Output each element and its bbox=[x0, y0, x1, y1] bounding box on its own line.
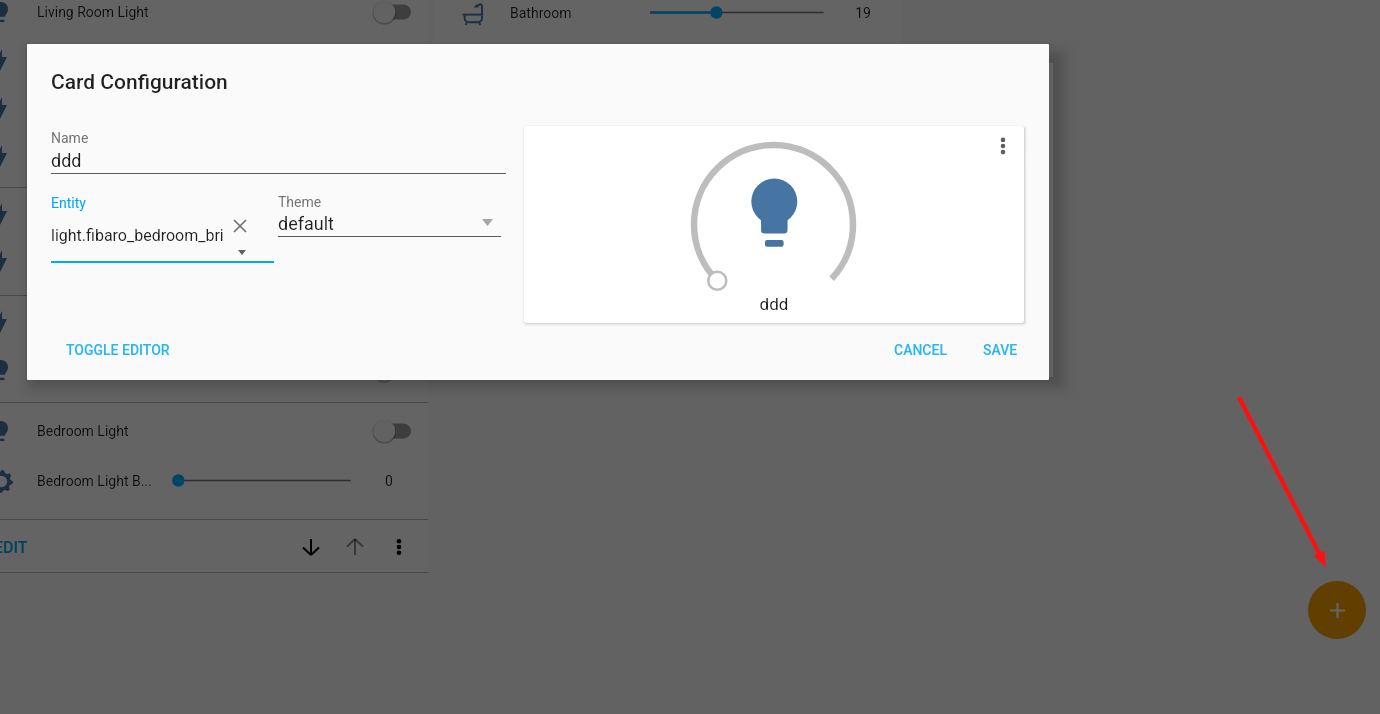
staticText: default bbox=[278, 213, 334, 234]
staticText: SAVE bbox=[983, 342, 1018, 358]
staticText: 0 bbox=[378, 473, 400, 489]
staticText: TOGGLE EDITOR bbox=[66, 342, 170, 358]
staticText: Theme bbox=[278, 194, 322, 210]
button[interactable]: Toggle bbox=[0, 347, 428, 393]
staticText: ddd bbox=[51, 150, 82, 171]
staticText: EDIT bbox=[0, 538, 28, 557]
staticText: Name bbox=[51, 130, 89, 146]
staticText: light.fibaro_bedroom_bri bbox=[51, 226, 224, 245]
button[interactable]: Living Room Light bbox=[0, 0, 428, 35]
button[interactable]: Toggle bbox=[366, 350, 418, 390]
button[interactable]: Bedroom Light B... bbox=[0, 458, 428, 504]
staticText: CANCEL bbox=[894, 342, 947, 358]
staticText: 19 bbox=[853, 5, 873, 21]
button[interactable] bbox=[0, 37, 428, 83]
button[interactable]: Open entity list bbox=[230, 240, 254, 264]
button[interactable]: Bedroom Light bbox=[0, 408, 428, 454]
staticText: Bedroom Light bbox=[37, 423, 129, 439]
button[interactable]: TOGGLE EDITOR bbox=[54, 332, 182, 368]
button[interactable]: Move card down bbox=[291, 527, 331, 567]
button[interactable]: SAVE bbox=[971, 332, 1030, 368]
button[interactable]: Toggle Living Room Light bbox=[366, 0, 418, 32]
staticText: Bathroom bbox=[510, 5, 572, 21]
button[interactable]: Card options bbox=[989, 132, 1017, 160]
button[interactable] bbox=[0, 133, 428, 179]
button[interactable]: Open theme list bbox=[472, 207, 502, 237]
staticText: Entity bbox=[51, 195, 86, 211]
staticText: Card Configuration bbox=[51, 70, 228, 95]
button[interactable]: Add card bbox=[1308, 581, 1366, 639]
button[interactable] bbox=[0, 191, 428, 237]
button[interactable]: More options bbox=[379, 527, 419, 567]
staticText: Bedroom Light B... bbox=[37, 473, 152, 489]
button[interactable]: Bathroom bbox=[433, 0, 901, 36]
button[interactable] bbox=[0, 0, 428, 11]
staticText: ddd bbox=[524, 294, 1024, 314]
button[interactable]: Move card up bbox=[335, 527, 375, 567]
staticText: Living Room Light bbox=[37, 4, 149, 20]
button[interactable]: Clear entity bbox=[225, 211, 255, 241]
button[interactable]: EDIT bbox=[0, 532, 36, 563]
button[interactable] bbox=[0, 238, 428, 284]
button[interactable]: Toggle Bedroom Light bbox=[366, 411, 418, 451]
button[interactable] bbox=[0, 85, 428, 131]
button[interactable]: CANCEL bbox=[882, 332, 959, 368]
button[interactable] bbox=[0, 299, 428, 345]
